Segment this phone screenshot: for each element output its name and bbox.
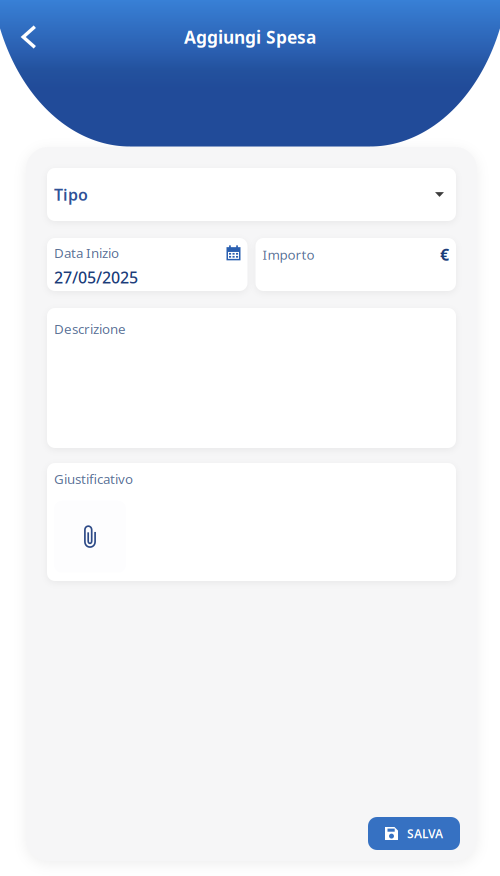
staticText: Descrizione (54, 320, 126, 338)
staticText: Tipo (54, 184, 88, 205)
staticText: € (440, 244, 449, 265)
staticText: SALVA (407, 825, 443, 841)
button[interactable]: Descrizione (47, 308, 456, 448)
staticText: 27/05/2025 (54, 267, 138, 288)
staticText: Importo (262, 246, 314, 263)
button[interactable]: SALVA (368, 817, 460, 850)
button[interactable]: Tipo (47, 168, 456, 221)
button[interactable]: Indietro (7, 13, 51, 61)
button[interactable]: Importo (255, 238, 456, 291)
button[interactable]: Allega giustificativo (54, 501, 126, 573)
staticText: Data Inizio (54, 244, 119, 262)
button[interactable]: Data Inizio (47, 238, 247, 291)
staticText: Giustificativo (54, 470, 133, 488)
staticText: Aggiungi Spesa (184, 25, 316, 48)
